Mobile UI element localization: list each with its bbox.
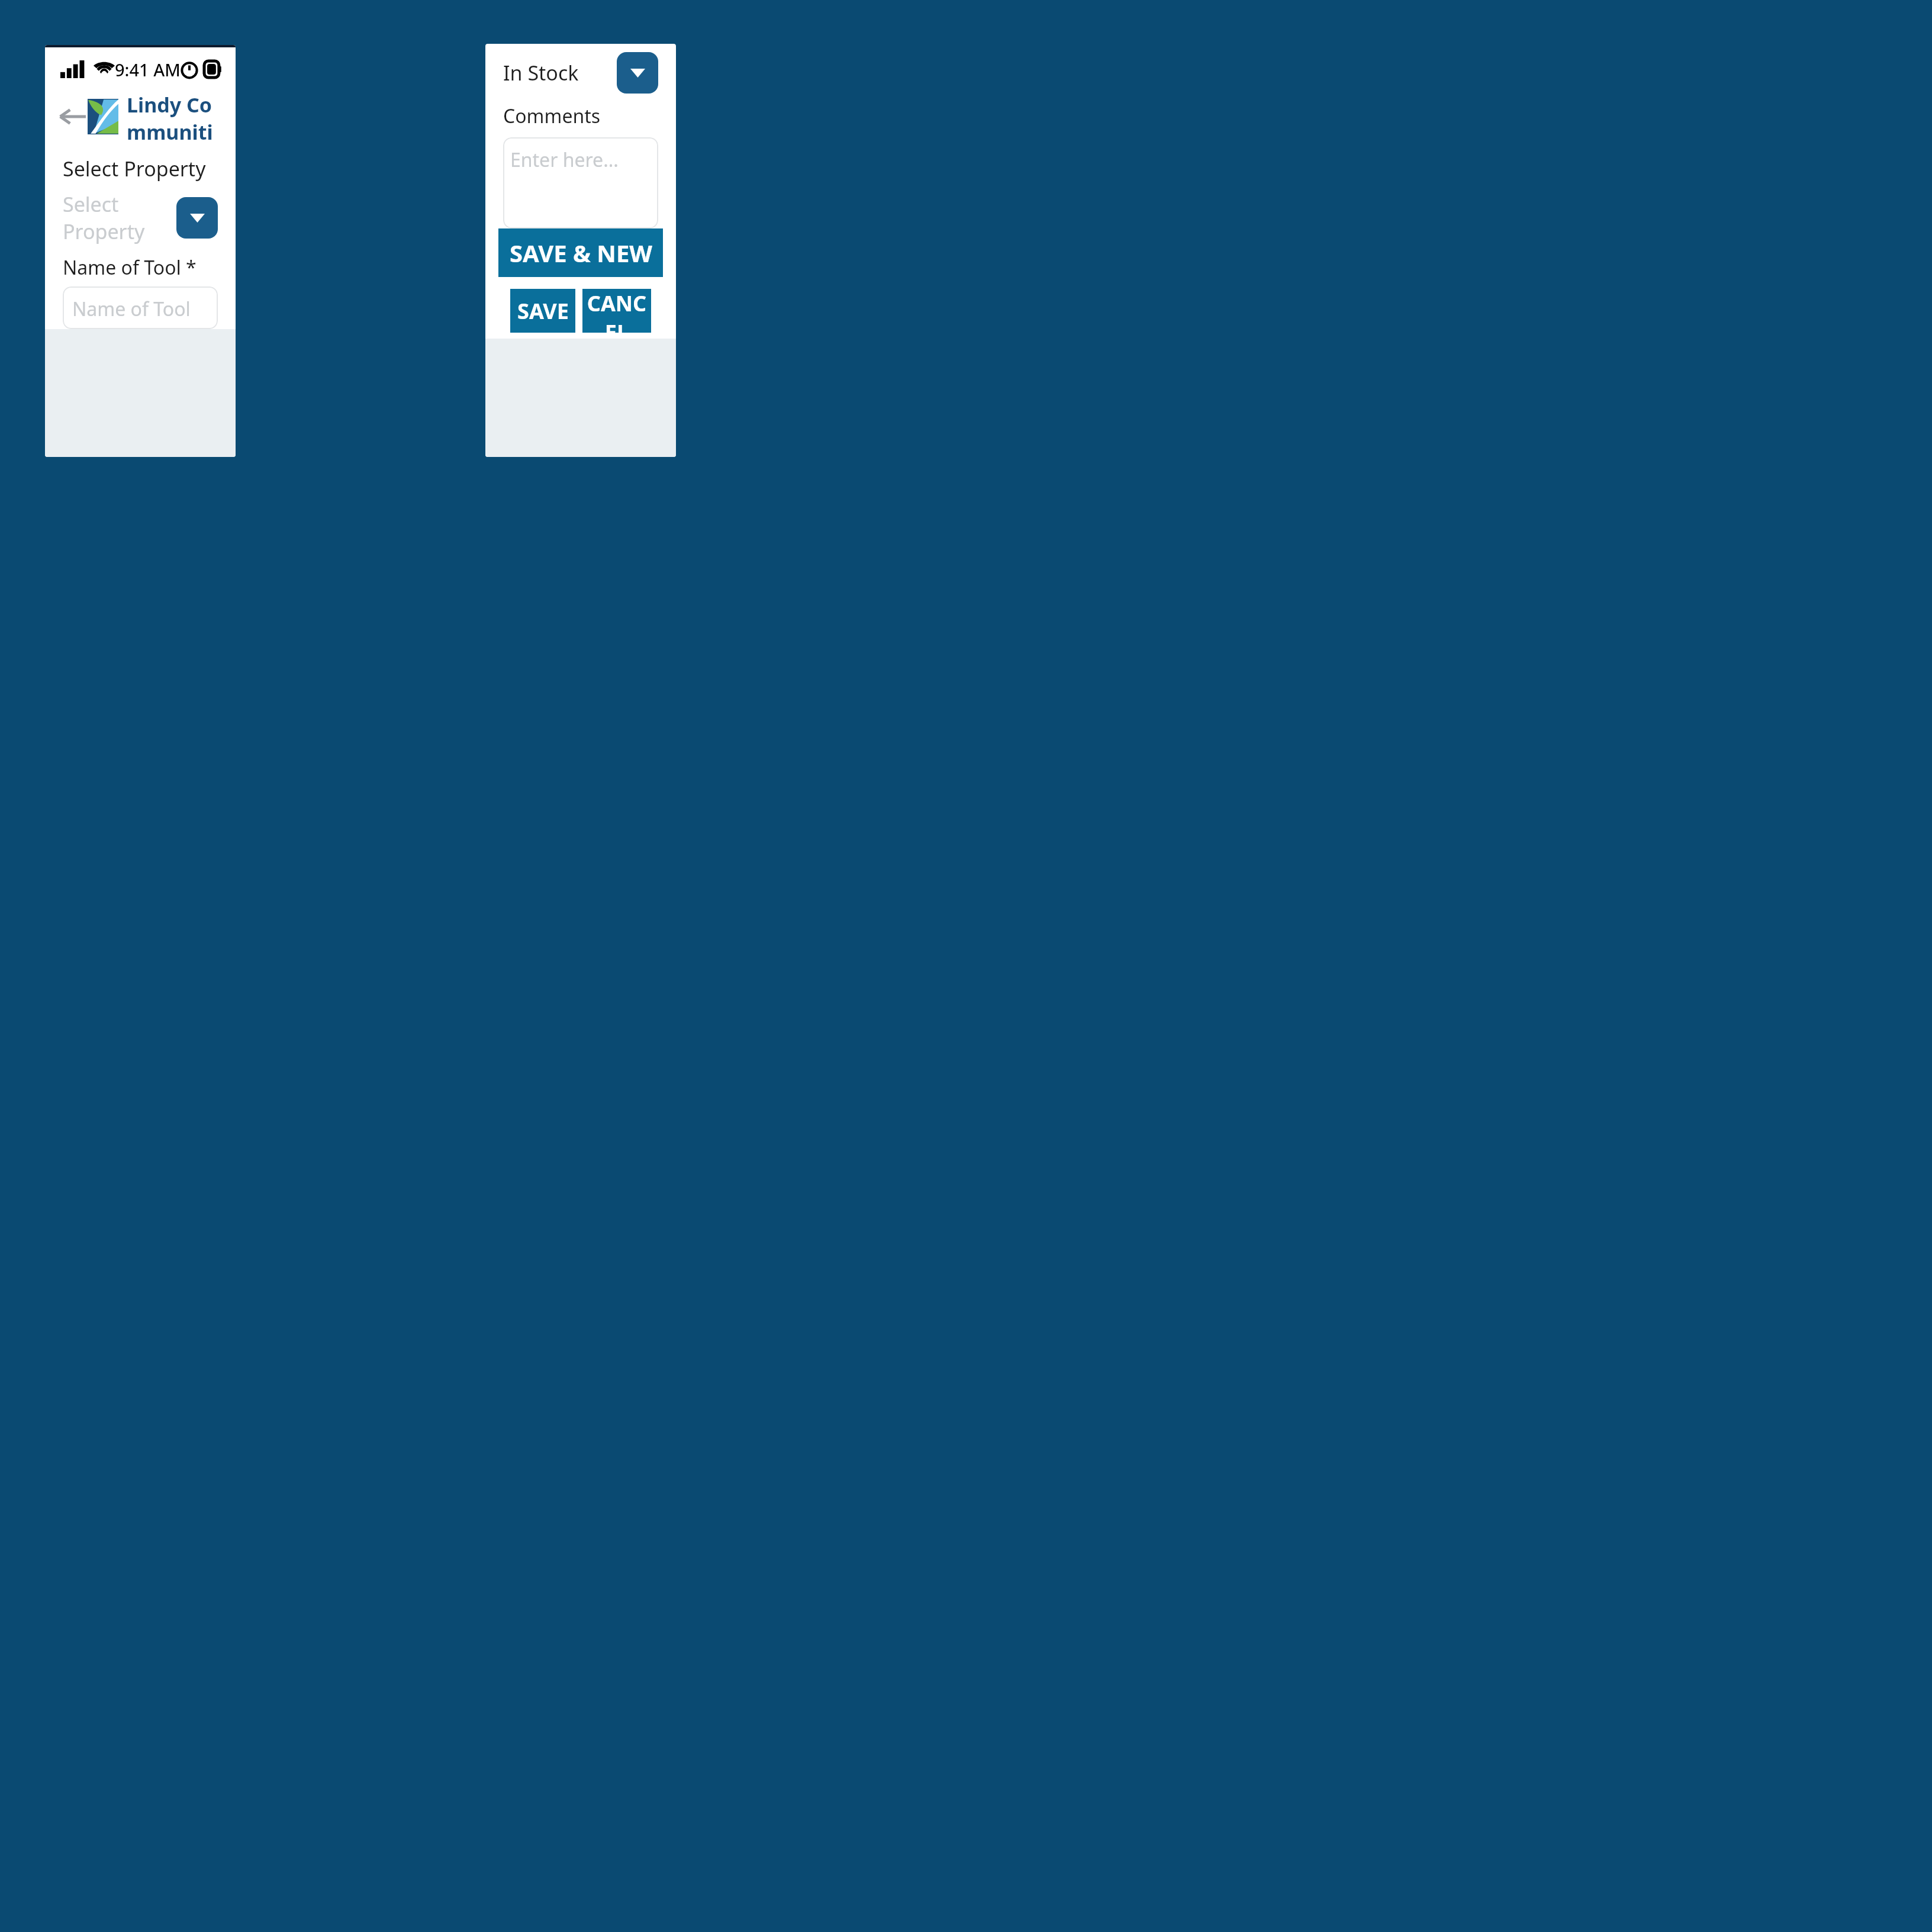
staticText: Comments (503, 103, 601, 129)
button[interactable]: Open property list (176, 197, 218, 239)
button[interactable]: CANCEL (582, 289, 651, 333)
staticText: Select Property (63, 191, 176, 245)
staticText: Enter here... (510, 147, 619, 173)
staticText: 9:41 AM (115, 58, 181, 81)
button[interactable]: Enter here... (503, 137, 658, 228)
staticText: Name of Tool * (63, 255, 197, 281)
staticText: CANCEL (582, 289, 651, 333)
button[interactable]: Back (57, 101, 88, 132)
staticText: SAVE & NEW (510, 237, 652, 269)
staticText: Lindy Communities (127, 91, 224, 142)
staticText: SAVE (517, 297, 569, 326)
button[interactable]: Open status list (617, 52, 658, 94)
button[interactable]: SAVE & NEW (498, 228, 663, 277)
staticText: Select Property (63, 155, 206, 182)
button[interactable]: SAVE (510, 289, 575, 333)
button[interactable]: Name of Tool (63, 286, 218, 329)
staticText: In Stock (503, 59, 617, 86)
staticText: Name of Tool (72, 296, 191, 322)
